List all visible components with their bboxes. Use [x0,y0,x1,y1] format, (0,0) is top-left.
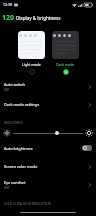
button[interactable]: Screen color mode [0,160,96,173]
button[interactable]: Auto switch [0,79,96,94]
button[interactable]: Light mode [18,31,45,75]
staticText: Off [4,88,9,92]
staticText: Dark mode settings [4,102,88,107]
staticText: Screen color mode [4,164,88,169]
staticText: Dark mode [56,62,75,67]
staticText: OLED ULTRA HIGH RESOLUTION [4,202,51,206]
staticText: Auto brightness [4,146,82,151]
staticText: Display & brightness [16,15,61,21]
staticText: Auto switch [4,82,25,87]
staticText: Off [4,186,9,190]
staticText: Eye comfort [4,180,26,185]
staticText: BRIGHTNESS [4,121,23,125]
button[interactable]: Eye comfort [0,177,96,192]
staticText: 12:38 [3,2,12,7]
other: Select light mode [29,69,35,75]
staticText: Light mode [22,62,41,67]
other: Dark mode selected [63,69,69,75]
button[interactable]: Dark mode [52,31,79,75]
button[interactable]: Dark mode settings [0,98,96,111]
button[interactable]: Auto brightness [0,141,96,155]
staticText: 120 [2,13,15,23]
